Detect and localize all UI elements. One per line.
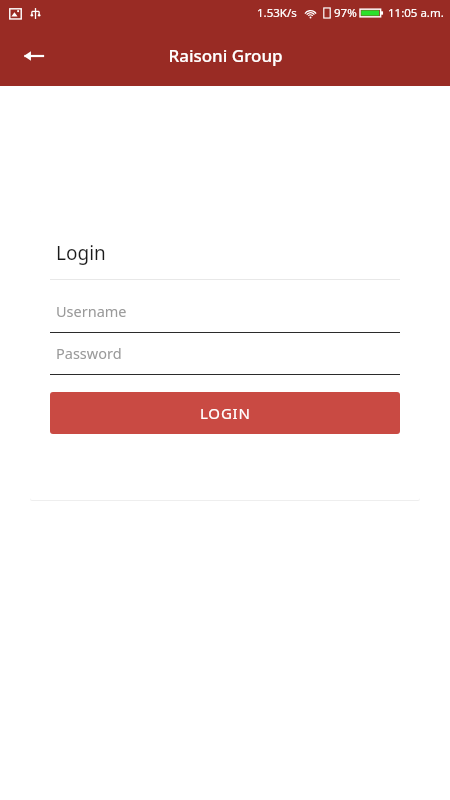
button[interactable]: Password bbox=[50, 340, 400, 375]
staticText: LOGIN bbox=[200, 403, 251, 423]
button[interactable]: LOGIN bbox=[50, 392, 400, 434]
staticText: Login bbox=[56, 240, 106, 266]
staticText: 97% bbox=[334, 5, 357, 21]
staticText: Password bbox=[56, 343, 122, 363]
staticText: Username bbox=[56, 301, 127, 321]
button[interactable]: Username bbox=[50, 298, 400, 333]
staticText: 1.53K/s bbox=[257, 5, 297, 21]
button[interactable]: Back bbox=[14, 36, 54, 76]
staticText: 11:05 a.m. bbox=[388, 5, 444, 21]
staticText: Raisoni Group bbox=[168, 44, 283, 67]
